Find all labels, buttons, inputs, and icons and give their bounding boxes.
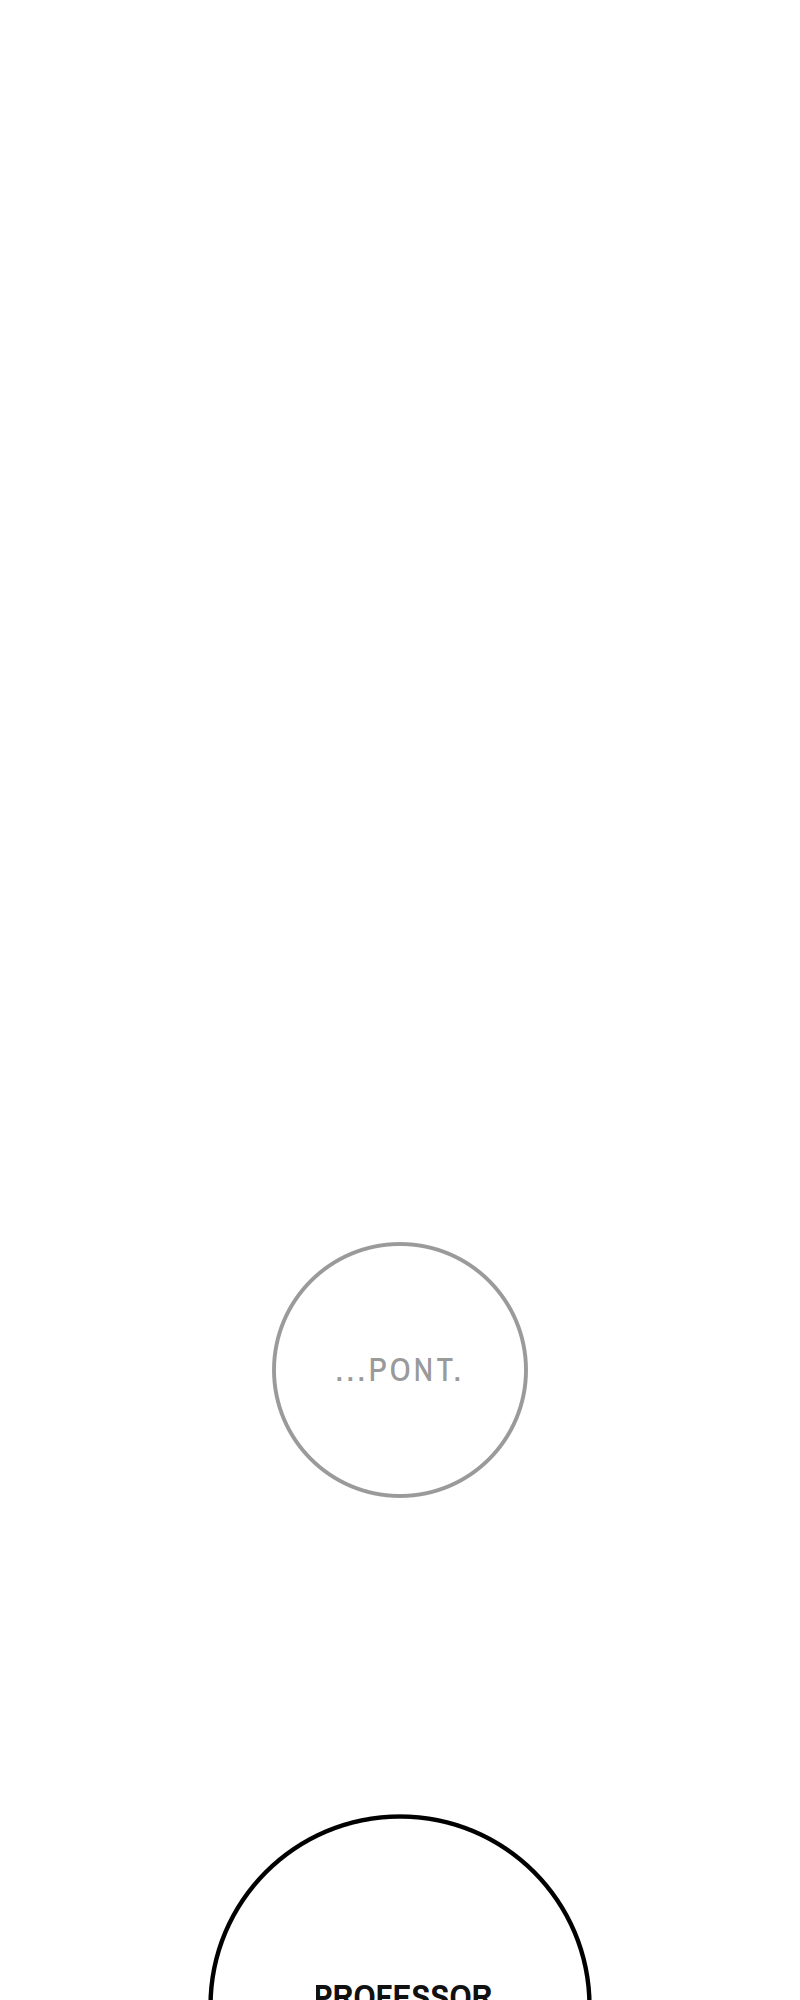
button[interactable]: PROFESSOR (210, 1816, 589, 2000)
button[interactable]: ...PONT. (274, 1244, 526, 1496)
staticText: PROFESSOR (313, 1973, 492, 2000)
staticText: ...PONT. (335, 1347, 461, 1391)
